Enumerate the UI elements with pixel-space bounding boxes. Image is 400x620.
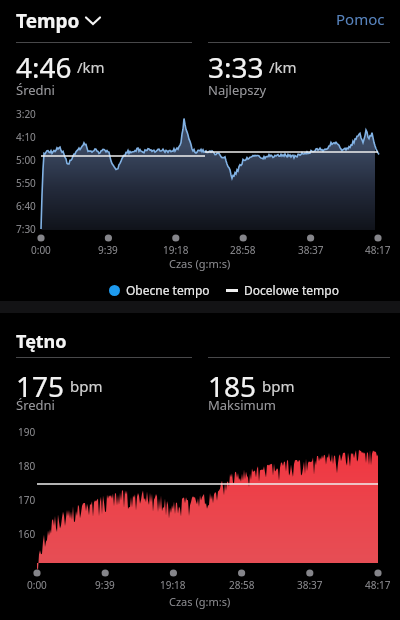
staticText: Czas (g:m:s) (169, 594, 231, 609)
button[interactable]: 4:46 (16, 42, 192, 106)
staticText: 48:17 (365, 578, 391, 592)
staticText: bpm (70, 376, 103, 396)
staticText: 4:46 (16, 48, 72, 86)
staticText: Obecne tempo (126, 282, 210, 298)
staticText: Docelowe tempo (244, 282, 339, 298)
staticText: 160 (18, 527, 36, 541)
staticText: 9:39 (98, 243, 118, 257)
staticText: 19:18 (160, 578, 186, 592)
staticText: 6:40 (16, 199, 36, 213)
staticText: 5:00 (16, 153, 36, 167)
staticText: 0:00 (31, 243, 51, 257)
staticText: 3:20 (16, 107, 36, 121)
button[interactable]: 175 (16, 357, 192, 421)
staticText: 28:58 (230, 243, 256, 257)
staticText: Maksimum (208, 396, 276, 414)
staticText: 170 (18, 493, 36, 507)
staticText: /km (77, 57, 105, 77)
staticText: 38:37 (298, 243, 324, 257)
staticText: Najlepszy (208, 81, 267, 99)
button[interactable]: 3:33 (208, 42, 390, 106)
staticText: 5:50 (16, 176, 36, 190)
staticText: 28:58 (229, 578, 255, 592)
staticText: 4:10 (16, 130, 36, 144)
staticText: 38:37 (297, 578, 323, 592)
staticText: 180 (18, 459, 36, 473)
button[interactable]: Tempo (16, 8, 100, 34)
staticText: 0:00 (27, 578, 47, 592)
staticText: 190 (18, 425, 36, 439)
staticText: 3:33 (208, 48, 264, 86)
staticText: Tempo (16, 8, 80, 34)
staticText: Tętno (16, 329, 67, 354)
staticText: 7:30 (16, 222, 36, 236)
button[interactable]: 185 (208, 357, 390, 421)
staticText: 48:17 (365, 243, 391, 257)
staticText: 9:39 (95, 578, 115, 592)
staticText: Średni (16, 396, 55, 414)
staticText: 19:18 (163, 243, 189, 257)
staticText: Średni (16, 81, 55, 99)
staticText: /km (269, 57, 297, 77)
staticText: Czas (g:m:s) (169, 256, 231, 271)
staticText: 175 (16, 367, 65, 405)
button[interactable]: Pomoc (336, 9, 385, 29)
staticText: Pomoc (336, 9, 385, 29)
staticText: bpm (262, 376, 295, 396)
staticText: 185 (208, 367, 257, 405)
